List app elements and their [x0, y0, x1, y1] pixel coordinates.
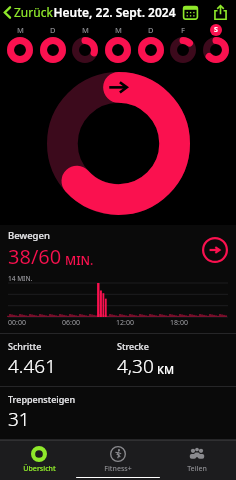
button[interactable]: D [39, 24, 67, 63]
staticText: M [17, 25, 24, 35]
staticText: MIN. [65, 252, 94, 268]
button[interactable]: Teilen [208, 0, 232, 24]
staticText: M [82, 25, 89, 35]
button[interactable]: Details [202, 237, 228, 263]
button[interactable]: Treppensteigen [8, 393, 236, 432]
staticText: 06:00 [62, 318, 80, 328]
button[interactable]: F [169, 24, 197, 63]
staticText: Teilen [187, 464, 207, 474]
button[interactable]: Kalender [178, 0, 202, 24]
staticText: 18:00 [170, 318, 188, 328]
staticText: D [50, 25, 56, 35]
staticText: 00:00 [8, 318, 26, 328]
staticText: 4.461 [8, 353, 57, 379]
staticText: F [181, 25, 185, 35]
staticText: Schritte [8, 340, 42, 352]
button[interactable]: Fitness+ [78, 441, 157, 479]
staticText: Strecke [117, 340, 149, 352]
staticText: 12:00 [116, 318, 134, 328]
staticText: Heute, 22. Sept. 2024 [53, 4, 176, 20]
staticText: D [148, 25, 154, 35]
staticText: Treppensteigen [8, 393, 76, 405]
staticText: Bewegen [8, 229, 50, 242]
button[interactable]: Strecke [117, 340, 236, 379]
button[interactable]: M [71, 24, 99, 63]
staticText: Zurück [14, 4, 53, 20]
button[interactable]: Übersicht [0, 441, 78, 479]
button[interactable]: D [137, 24, 165, 63]
staticText: S [214, 25, 218, 35]
staticText: Übersicht [23, 464, 56, 474]
staticText: KM [157, 362, 175, 377]
staticText: 38/60 [8, 243, 62, 270]
button[interactable]: M [6, 24, 34, 63]
staticText: 4,30 [117, 353, 154, 379]
button[interactable]: Zurück [0, 2, 57, 22]
button[interactable]: S [202, 24, 230, 63]
staticText: Fitness+ [104, 464, 132, 474]
staticText: M [115, 25, 122, 35]
staticText: 31 [8, 406, 30, 432]
button[interactable]: Schritte [8, 340, 117, 379]
staticText: 14 MIN. [8, 274, 33, 283]
button[interactable]: M [104, 24, 132, 63]
button[interactable]: Teilen [157, 441, 236, 479]
